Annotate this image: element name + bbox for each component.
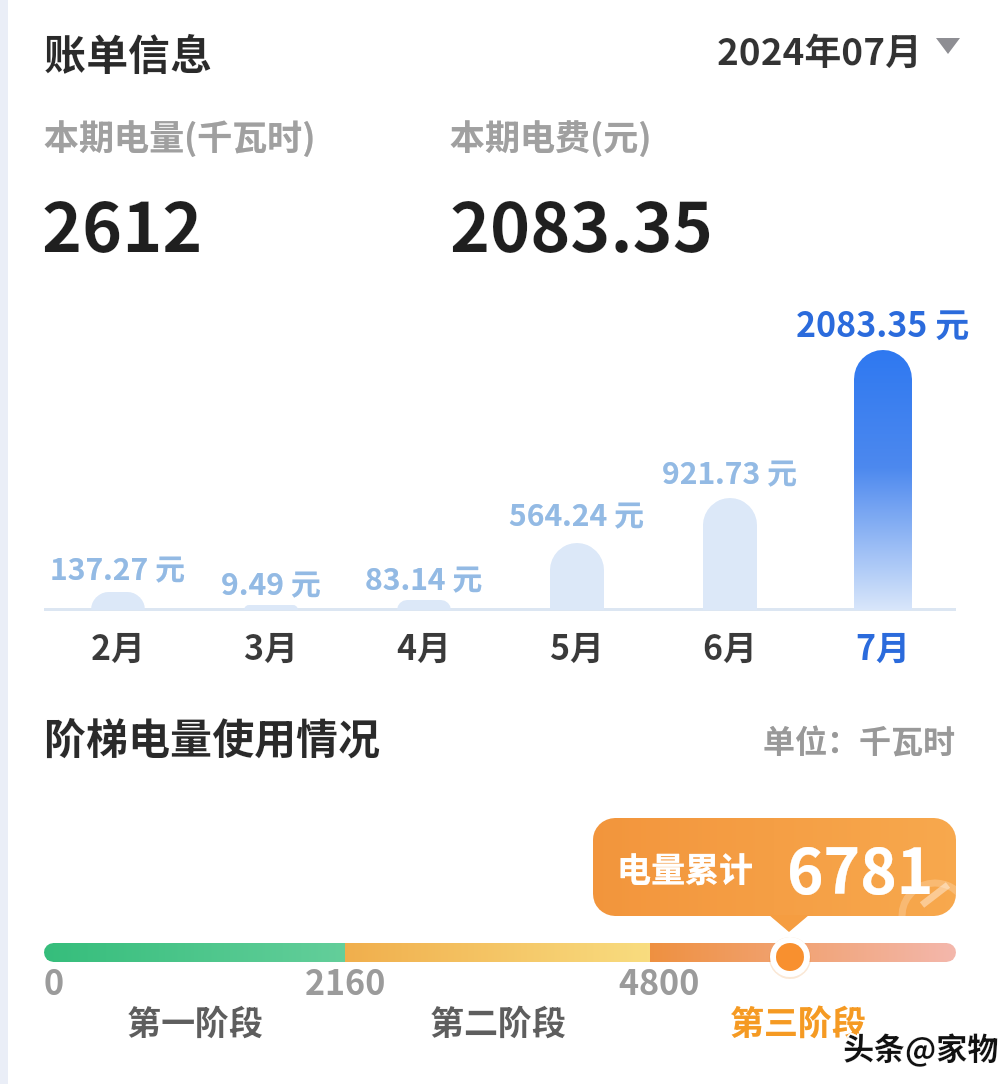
staticText: 921.73 元 xyxy=(662,449,798,492)
staticText: 阶梯电量使用情况 xyxy=(44,705,381,766)
staticText: 第二阶段 xyxy=(430,996,566,1045)
staticText: 头条@家物 xyxy=(843,1026,999,1071)
staticText: 4800 xyxy=(619,956,700,1005)
staticText: 电量累计 xyxy=(617,843,753,892)
staticText: 2083.35 xyxy=(450,173,713,271)
staticText: 头条@家物 xyxy=(843,1022,999,1067)
staticText: 第三阶段 xyxy=(730,996,866,1045)
staticText: 头条@家物 xyxy=(841,1024,997,1069)
button[interactable]: 电量累计 xyxy=(593,818,956,916)
staticText: 2160 xyxy=(305,956,386,1005)
staticText: 单位：千瓦时 xyxy=(763,716,956,762)
staticText: 83.14 元 xyxy=(365,555,483,598)
staticText: 564.24 元 xyxy=(509,491,645,534)
button[interactable]: 2024年07月 xyxy=(700,22,960,70)
staticText: 头条@家物 xyxy=(845,1024,1000,1069)
staticText: 0 xyxy=(44,956,65,1005)
staticText: 137.27 元 xyxy=(50,545,186,588)
staticText: 第一阶段 xyxy=(127,996,263,1045)
staticText: 6月 xyxy=(703,621,758,670)
staticText: 9.49 元 xyxy=(221,560,321,603)
staticText: 6781 xyxy=(787,822,934,912)
staticText: 4月 xyxy=(397,621,452,670)
staticText: 5月 xyxy=(550,621,605,670)
staticText: 2083.35 元 xyxy=(796,298,970,347)
staticText: 本期电费(元) xyxy=(450,109,652,160)
staticText: 2月 xyxy=(91,621,146,670)
staticText: 3月 xyxy=(244,621,299,670)
staticText: 本期电量(千瓦时) xyxy=(44,109,316,160)
staticText: 账单信息 xyxy=(44,21,213,82)
staticText: 7月 xyxy=(856,621,911,670)
staticText: 2612 xyxy=(42,173,203,271)
staticText: 2024年07月 xyxy=(717,22,922,70)
staticText: 头条@家物 xyxy=(843,1024,999,1069)
